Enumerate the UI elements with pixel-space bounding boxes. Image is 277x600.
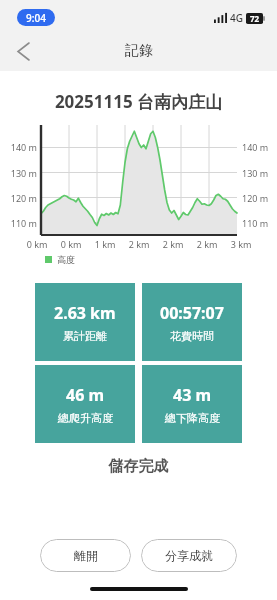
button[interactable]: 43 m xyxy=(142,365,242,443)
button[interactable]: Back xyxy=(8,36,38,66)
staticText: 1 km xyxy=(88,238,122,250)
staticText: 140 m xyxy=(242,141,277,153)
staticText: 花費時間 xyxy=(170,329,214,343)
staticText: 2 km xyxy=(156,238,190,250)
staticText: 9:04 xyxy=(26,11,46,25)
staticText: 120 m xyxy=(242,192,277,204)
staticText: 43 m xyxy=(173,384,212,406)
staticText: 110 m xyxy=(242,217,277,229)
button[interactable]: 00:57:07 xyxy=(142,283,242,361)
staticText: 2.63 km xyxy=(54,302,116,324)
staticText: 總下降高度 xyxy=(165,411,220,425)
staticText: 分享成就 xyxy=(165,548,213,563)
button[interactable]: 離開 xyxy=(40,539,131,572)
staticText: 20251115 台南內庄山 xyxy=(0,90,277,113)
staticText: 130 m xyxy=(242,167,277,179)
staticText: 120 m xyxy=(0,192,37,204)
staticText: 00:57:07 xyxy=(160,302,224,324)
staticText: 總爬升高度 xyxy=(58,411,113,425)
staticText: 130 m xyxy=(0,167,37,179)
staticText: 0 km xyxy=(54,238,88,250)
staticText: 4G xyxy=(230,11,243,25)
staticText: 110 m xyxy=(0,217,37,229)
staticText: 72 xyxy=(250,13,260,24)
staticText: 儲存完成 xyxy=(0,457,277,476)
button[interactable]: 分享成就 xyxy=(141,539,237,572)
staticText: 高度 xyxy=(57,254,75,265)
button[interactable]: 46 m xyxy=(35,365,135,443)
staticText: 記錄 xyxy=(125,42,153,60)
staticText: 3 km xyxy=(224,238,258,250)
staticText: 0 km xyxy=(20,238,54,250)
staticText: 2 km xyxy=(190,238,224,250)
button[interactable]: 2.63 km xyxy=(35,283,135,361)
staticText: 累計距離 xyxy=(63,329,107,343)
staticText: 46 m xyxy=(66,384,105,406)
staticText: 2 km xyxy=(122,238,156,250)
staticText: 離開 xyxy=(74,548,98,563)
staticText: 140 m xyxy=(0,141,37,153)
